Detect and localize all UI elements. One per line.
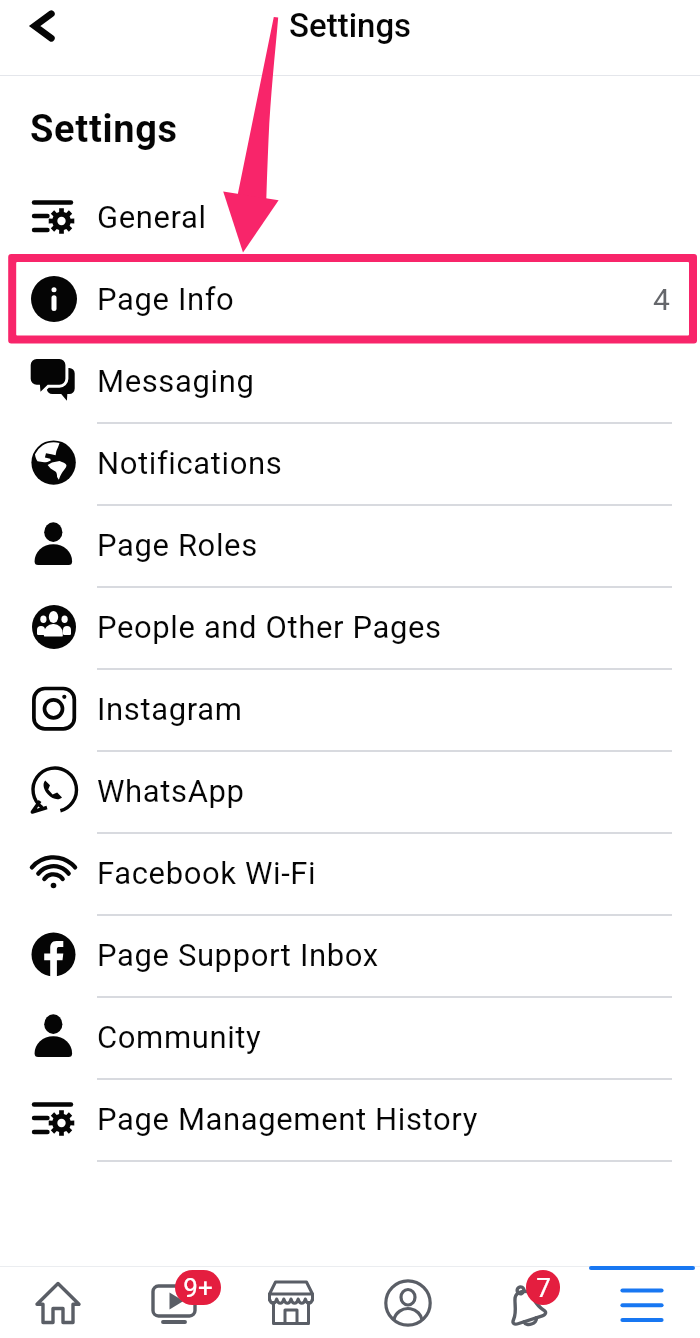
staticText: WhatsApp [97, 773, 245, 809]
button[interactable]: Menu [583, 1266, 700, 1338]
button[interactable]: Page Management History [0, 1078, 700, 1160]
button[interactable]: Marketplace [232, 1266, 349, 1338]
button[interactable]: Facebook Wi-Fi [0, 832, 700, 914]
staticText: Facebook Wi-Fi [97, 855, 317, 891]
staticText: Page Info [97, 281, 235, 317]
staticText: Page Roles [97, 527, 258, 563]
button[interactable]: Notifications [0, 422, 700, 504]
staticText: People and Other Pages [97, 609, 442, 645]
staticText: Settings [30, 107, 178, 152]
staticText: Messaging [97, 363, 255, 399]
staticText: Page Support Inbox [97, 937, 379, 973]
button[interactable]: Page Roles [0, 504, 700, 586]
button[interactable]: Community [0, 996, 700, 1078]
button[interactable]: Back [13, 0, 73, 56]
staticText: Instagram [97, 691, 243, 727]
button[interactable]: Home [0, 1266, 116, 1338]
button[interactable]: Notifications [466, 1266, 583, 1338]
staticText: Notifications [97, 445, 283, 481]
button[interactable]: Profile [349, 1266, 466, 1338]
button[interactable]: General [0, 176, 700, 258]
button[interactable]: Instagram [0, 668, 700, 750]
staticText: 7 [536, 1273, 551, 1303]
staticText: Community [97, 1019, 262, 1055]
staticText: 9+ [183, 1273, 213, 1303]
staticText: Page Management History [97, 1101, 478, 1137]
button[interactable]: Page Info [0, 258, 700, 340]
button[interactable]: Video [116, 1266, 232, 1338]
button[interactable]: People and Other Pages [0, 586, 700, 668]
button[interactable]: WhatsApp [0, 750, 700, 832]
button[interactable]: Page Support Inbox [0, 914, 700, 996]
button[interactable]: Messaging [0, 340, 700, 422]
staticText: 4 [653, 282, 670, 317]
staticText: Settings [289, 6, 412, 45]
staticText: General [97, 199, 207, 235]
